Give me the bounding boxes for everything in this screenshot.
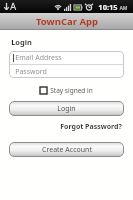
button[interactable]: Login: [9, 101, 124, 116]
staticText: Login: [57, 104, 76, 114]
staticText: 10:15: [98, 2, 118, 12]
staticText: AM: [119, 5, 128, 12]
staticText: Email Address: [15, 53, 62, 63]
button[interactable]: Password: [9, 65, 124, 78]
staticText: Forgot Password?: [60, 122, 122, 132]
staticText: Password: [15, 67, 47, 77]
button[interactable]: Forgot Password?: [58, 121, 124, 133]
button[interactable]: Email Address: [9, 51, 124, 64]
staticText: Login: [11, 37, 32, 47]
staticText: TownCar App: [36, 15, 98, 28]
button[interactable]: Stay signed in: [37, 84, 96, 97]
staticText: Create Account: [42, 145, 92, 155]
button[interactable]: Create Account: [9, 142, 124, 157]
staticText: Stay signed in: [50, 86, 93, 95]
